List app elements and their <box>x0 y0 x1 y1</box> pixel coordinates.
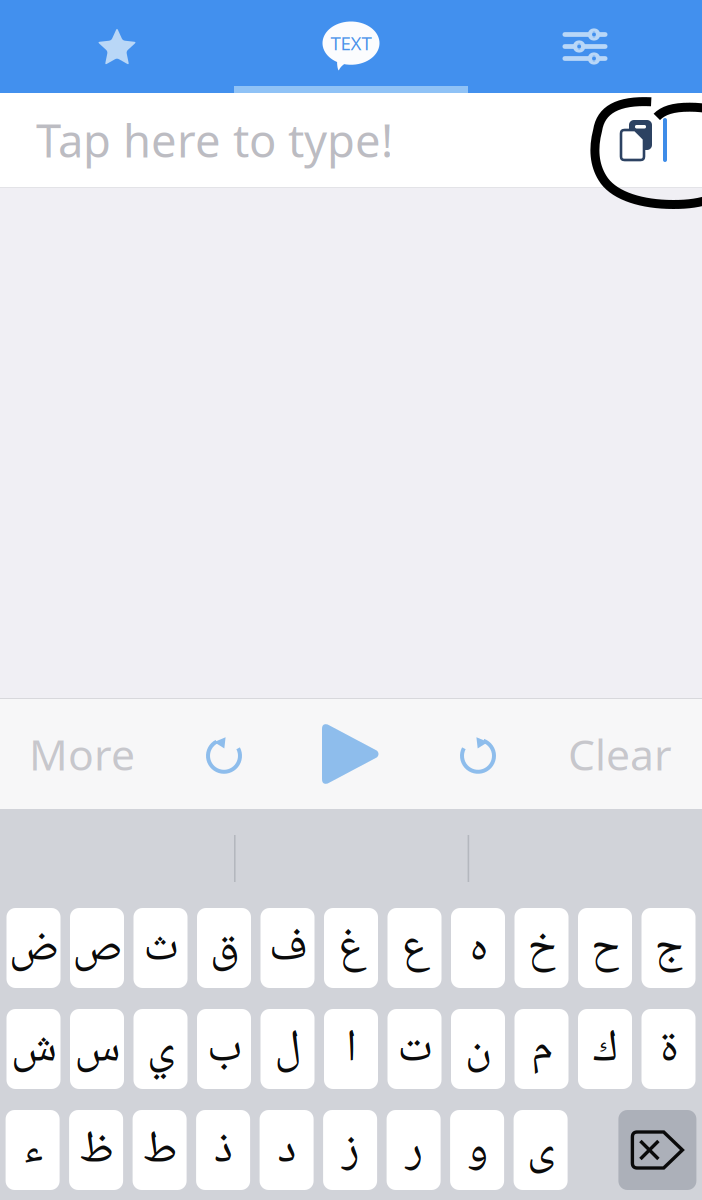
staticText: د <box>277 1119 296 1181</box>
button[interactable]: More <box>0 699 164 808</box>
button[interactable]: ح <box>578 908 632 988</box>
staticText: ق <box>209 917 238 979</box>
button[interactable]: س <box>70 1009 124 1089</box>
button[interactable]: Undo <box>164 699 284 808</box>
staticText: ج <box>654 917 683 979</box>
button[interactable]: و <box>450 1110 504 1190</box>
staticText: ة <box>659 1018 677 1080</box>
button[interactable]: ل <box>260 1009 314 1089</box>
button[interactable]: Clear <box>538 699 702 808</box>
staticText: س <box>74 1018 120 1080</box>
button[interactable]: ذ <box>196 1110 250 1190</box>
button[interactable]: ث <box>133 908 187 988</box>
staticText: غ <box>337 917 364 979</box>
button[interactable]: ش <box>6 1009 60 1089</box>
button[interactable]: ء <box>6 1110 60 1190</box>
button[interactable]: ة <box>641 1009 695 1089</box>
button[interactable]: Settings <box>468 0 702 93</box>
staticText: TEXT <box>330 31 371 55</box>
staticText: ط <box>142 1119 177 1181</box>
staticText: ع <box>401 917 428 979</box>
staticText: ى <box>527 1119 555 1181</box>
staticText: ك <box>592 1018 617 1080</box>
staticText: ر <box>405 1119 422 1181</box>
staticText: ض <box>8 917 58 979</box>
button[interactable]: ن <box>451 1009 505 1089</box>
button[interactable]: ي <box>133 1009 187 1089</box>
button[interactable]: ب <box>197 1009 251 1089</box>
staticText: ز <box>342 1119 359 1181</box>
staticText: ث <box>143 917 178 979</box>
staticText: Clear <box>568 726 672 782</box>
staticText: Tap here to type! <box>36 110 393 170</box>
staticText: و <box>467 1119 488 1181</box>
staticText: ب <box>206 1018 241 1080</box>
staticText: ي <box>146 1018 174 1080</box>
button[interactable]: غ <box>324 908 378 988</box>
button[interactable]: ر <box>387 1110 441 1190</box>
button[interactable]: م <box>514 1009 568 1089</box>
button[interactable]: ض <box>6 908 60 988</box>
button[interactable]: خ <box>514 908 568 988</box>
button[interactable]: ه <box>451 908 505 988</box>
staticText: خ <box>527 917 556 979</box>
button[interactable]: ز <box>323 1110 377 1190</box>
button[interactable]: Backspace <box>618 1110 696 1190</box>
staticText: ص <box>72 917 122 979</box>
button[interactable]: Play <box>284 699 418 808</box>
button[interactable]: ط <box>133 1110 187 1190</box>
staticText: ت <box>397 1018 432 1080</box>
staticText: ظ <box>79 1119 114 1181</box>
button[interactable]: ا <box>324 1009 378 1089</box>
staticText: More <box>29 726 135 782</box>
staticText: ه <box>469 917 487 979</box>
staticText: ش <box>10 1018 56 1080</box>
button[interactable]: Favourites <box>0 0 234 93</box>
staticText: م <box>530 1018 552 1080</box>
button[interactable]: د <box>260 1110 314 1190</box>
button[interactable]: Text <box>234 0 468 93</box>
staticText: ف <box>268 917 306 979</box>
button[interactable]: ف <box>260 908 314 988</box>
staticText: ل <box>274 1018 301 1080</box>
staticText: ذ <box>214 1119 233 1181</box>
button[interactable]: Paste <box>621 118 702 162</box>
button[interactable]: ع <box>387 908 441 988</box>
staticText: ن <box>464 1018 491 1080</box>
staticText: ح <box>590 917 619 979</box>
button[interactable]: ج <box>641 908 695 988</box>
staticText: ا <box>345 1018 356 1080</box>
button[interactable]: Redo <box>418 699 538 808</box>
button[interactable]: ص <box>70 908 124 988</box>
staticText: ء <box>23 1119 43 1181</box>
button[interactable]: ظ <box>69 1110 123 1190</box>
button[interactable]: ق <box>197 908 251 988</box>
button[interactable]: ك <box>578 1009 632 1089</box>
button[interactable]: ت <box>387 1009 441 1089</box>
button[interactable]: ى <box>514 1110 568 1190</box>
